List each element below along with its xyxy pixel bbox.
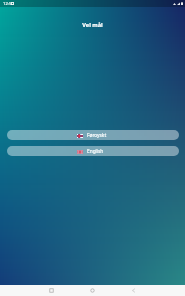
button[interactable]: Back bbox=[129, 286, 138, 295]
button[interactable]: Føroyskt bbox=[7, 130, 179, 140]
staticText: English bbox=[87, 148, 104, 155]
button[interactable]: Home bbox=[88, 286, 97, 295]
staticText: Føroyskt bbox=[87, 132, 107, 139]
staticText: Vel mål bbox=[0, 21, 185, 29]
staticText: 12:50 bbox=[3, 1, 14, 7]
button[interactable]: Recents bbox=[47, 286, 56, 295]
button[interactable]: English bbox=[7, 146, 179, 156]
